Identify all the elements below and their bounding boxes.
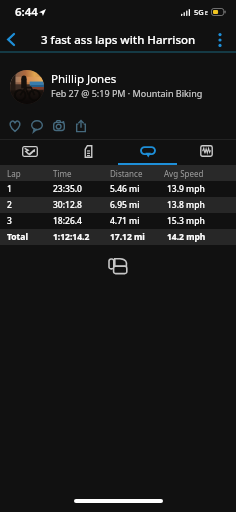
staticText: Distance: [110, 168, 143, 179]
button[interactable]: Phillip Jones: [0, 57, 236, 117]
staticText: Time: [53, 168, 72, 179]
button[interactable]: Add photos: [48, 112, 70, 139]
staticText: 15.3 mph: [167, 215, 205, 227]
staticText: 23:35.0: [53, 183, 82, 195]
button[interactable]: Comment: [26, 112, 48, 139]
staticText: 1: [7, 183, 12, 195]
button[interactable]: Like: [4, 112, 26, 139]
staticText: Total: [7, 231, 28, 243]
button[interactable]: Analysis: [177, 139, 236, 165]
staticText: 6:44: [15, 4, 38, 20]
staticText: 6.95 mi: [110, 199, 140, 211]
button[interactable]: Share: [70, 112, 92, 139]
staticText: 17.12 mi: [110, 231, 145, 243]
staticText: 30:12.8: [53, 199, 82, 211]
staticText: 1:12:14.2: [53, 231, 90, 243]
button[interactable]: Back: [0, 26, 22, 53]
staticText: 5.46 mi: [110, 183, 140, 195]
staticText: 5G: [194, 7, 204, 17]
staticText: Avg Speed: [164, 168, 204, 179]
button[interactable]: Map: [0, 139, 59, 165]
button[interactable]: 3: [0, 213, 236, 229]
staticText: 3: [7, 215, 12, 227]
staticText: 4.71 mi: [110, 215, 140, 227]
button[interactable]: Laps: [118, 139, 177, 165]
staticText: 3 fast ass laps with Harrison: [41, 32, 196, 48]
staticText: Feb 27 @ 5:19 PM · Mountain Biking: [51, 87, 203, 99]
staticText: 18:26.4: [53, 215, 82, 227]
button[interactable]: Lap: [0, 165, 236, 181]
staticText: 14.2 mph: [167, 231, 206, 243]
staticText: Phillip Jones: [51, 71, 117, 87]
button[interactable]: 2: [0, 197, 236, 213]
staticText: 13.8 mph: [167, 199, 205, 211]
staticText: 13.9 mph: [167, 183, 205, 195]
button[interactable]: Total: [0, 229, 236, 245]
staticText: Lap: [7, 168, 21, 179]
button[interactable]: Splits: [59, 139, 118, 165]
button[interactable]: 1: [0, 181, 236, 197]
staticText: E: [205, 10, 208, 17]
button[interactable]: More options: [205, 26, 235, 53]
staticText: 2: [7, 199, 12, 211]
